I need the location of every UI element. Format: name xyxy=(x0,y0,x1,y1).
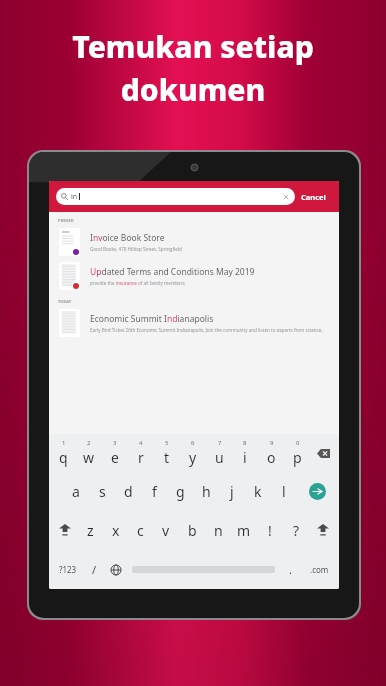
button[interactable]: 6 xyxy=(180,434,206,472)
staticText: m xyxy=(237,521,251,540)
staticText: p xyxy=(293,448,302,467)
staticText: 2 xyxy=(87,439,91,447)
button[interactable]: n xyxy=(205,511,231,550)
staticText: 8 xyxy=(243,439,247,447)
staticText: Invoice Book Store xyxy=(90,232,165,244)
staticText: in xyxy=(71,192,78,202)
button[interactable]: 8 xyxy=(232,434,258,472)
staticText: Early Bird Ticket 26th Economic Summit I… xyxy=(90,327,331,333)
staticText: 4 xyxy=(139,439,143,447)
staticText: 5 xyxy=(165,439,169,447)
staticText: dokumen xyxy=(0,69,386,110)
button[interactable]: f xyxy=(141,472,167,511)
button[interactable]: d xyxy=(115,472,141,511)
staticText: 6 xyxy=(191,439,195,447)
button[interactable]: 9 xyxy=(258,434,284,472)
staticText: l xyxy=(282,482,286,501)
button[interactable]: z xyxy=(78,511,103,550)
staticText: q xyxy=(59,448,68,467)
staticText: f xyxy=(152,482,157,501)
button[interactable]: 5 xyxy=(154,434,180,472)
button[interactable]: Space xyxy=(127,550,279,589)
button[interactable]: s xyxy=(89,472,115,511)
staticText: 7 xyxy=(218,439,222,447)
button[interactable]: 1 xyxy=(51,434,76,472)
button[interactable]: l xyxy=(271,472,297,511)
button[interactable]: Clear search xyxy=(282,193,290,201)
staticText: Cancel xyxy=(301,192,326,202)
staticText: . xyxy=(289,562,292,577)
button[interactable]: x xyxy=(103,511,128,550)
staticText: 0 xyxy=(296,439,300,447)
staticText: PINNED xyxy=(58,218,74,223)
staticText: d xyxy=(124,482,133,501)
button[interactable]: 3 xyxy=(102,434,128,472)
staticText: u xyxy=(215,448,224,467)
staticText: ?123 xyxy=(59,564,77,575)
staticText: / xyxy=(92,562,97,577)
button[interactable]: 0 xyxy=(284,434,310,472)
button[interactable]: in xyxy=(56,188,295,205)
staticText: Good Books, 470 Hilltop Street, Springfi… xyxy=(90,246,182,252)
staticText: Updated Terms and Conditions May 2019 xyxy=(90,266,255,278)
staticText: r xyxy=(138,448,144,467)
staticText: ! xyxy=(268,521,272,540)
staticText: h xyxy=(202,482,211,501)
button[interactable]: c xyxy=(128,511,153,550)
button[interactable]: ? xyxy=(283,511,309,550)
staticText: z xyxy=(87,521,94,540)
staticText: ? xyxy=(293,521,300,540)
staticText: provide the insurance of all family memb… xyxy=(90,280,185,286)
staticText: 1 xyxy=(62,439,66,447)
button[interactable]: g xyxy=(167,472,193,511)
button[interactable]: v xyxy=(153,511,179,550)
button[interactable]: 7 xyxy=(206,434,232,472)
staticText: i xyxy=(243,448,247,467)
button[interactable]: Backspace xyxy=(310,434,337,472)
staticText: o xyxy=(267,448,276,467)
button[interactable]: 4 xyxy=(128,434,154,472)
button[interactable]: m xyxy=(231,511,257,550)
button[interactable]: .com xyxy=(302,550,337,589)
button[interactable]: Enter xyxy=(297,472,337,511)
staticText: j xyxy=(230,482,234,501)
staticText: s xyxy=(99,482,106,501)
staticText: n xyxy=(214,521,223,540)
button[interactable]: k xyxy=(245,472,271,511)
button[interactable]: h xyxy=(193,472,219,511)
staticText: Economic Summit Indianapolis xyxy=(90,313,214,325)
button[interactable]: Cancel xyxy=(295,190,332,204)
button[interactable]: Invoice Book Store xyxy=(49,225,339,259)
button[interactable]: Shift xyxy=(51,511,78,550)
staticText: 9 xyxy=(270,439,274,447)
button[interactable]: Economic Summit Indianapolis xyxy=(49,306,339,340)
staticText: b xyxy=(188,521,197,540)
staticText: Temukan setiap xyxy=(0,26,386,67)
button[interactable]: 2 xyxy=(76,434,102,472)
button[interactable]: ?123 xyxy=(51,550,84,589)
staticText: c xyxy=(137,521,144,540)
button[interactable]: Shift xyxy=(309,511,337,550)
button[interactable]: . xyxy=(279,550,302,589)
button[interactable]: ! xyxy=(257,511,283,550)
button[interactable]: Updated Terms and Conditions May 2019 xyxy=(49,259,339,293)
staticText: 3 xyxy=(113,439,117,447)
staticText: TODAY xyxy=(58,299,72,304)
button[interactable]: Change language xyxy=(104,550,127,589)
staticText: k xyxy=(254,482,262,501)
staticText: x xyxy=(112,521,120,540)
staticText: y xyxy=(189,448,197,467)
button[interactable]: b xyxy=(179,511,205,550)
button[interactable]: / xyxy=(84,550,104,589)
button[interactable]: a xyxy=(63,472,89,511)
staticText: g xyxy=(176,482,185,501)
staticText: w xyxy=(83,448,95,467)
button[interactable]: j xyxy=(219,472,245,511)
staticText: a xyxy=(72,482,80,501)
staticText: v xyxy=(162,521,170,540)
staticText: e xyxy=(111,448,119,467)
staticText: t xyxy=(164,448,170,467)
staticText: .com xyxy=(310,564,329,575)
